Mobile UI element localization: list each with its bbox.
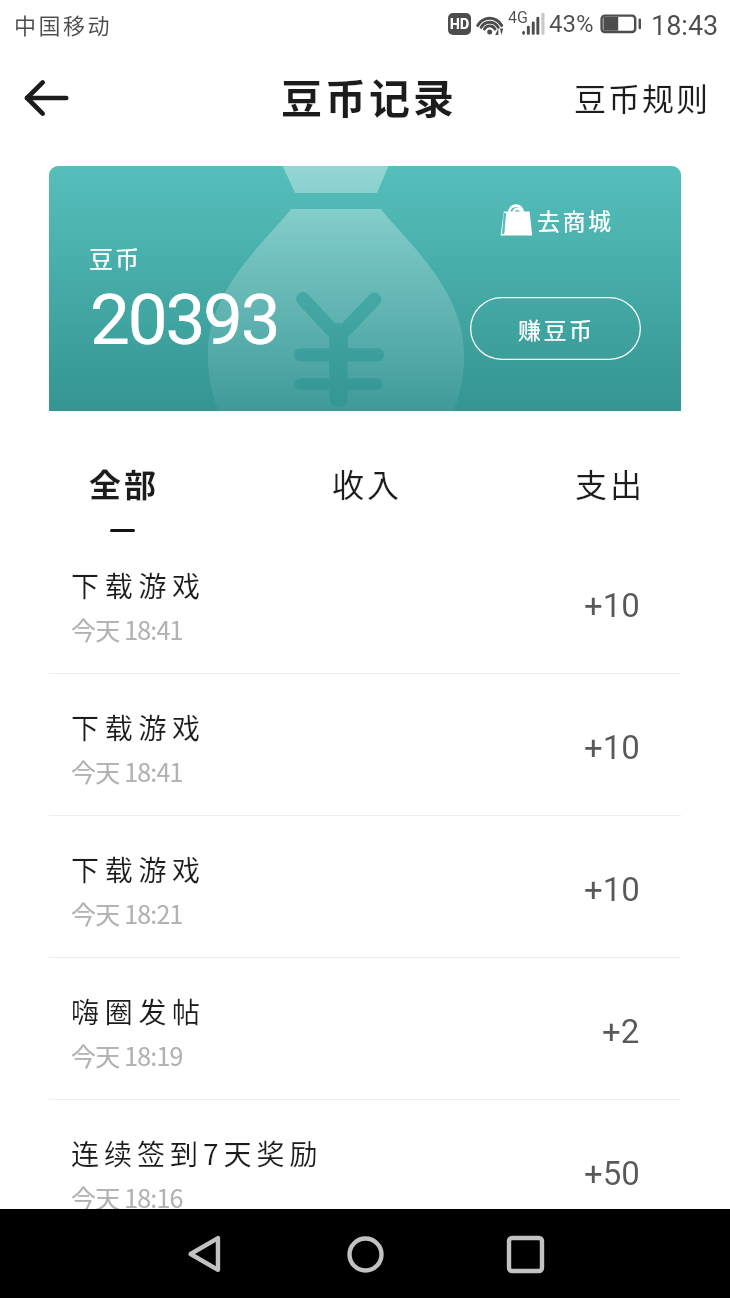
staticText: 今天 18:16	[71, 1179, 183, 1215]
staticText: +50	[584, 1154, 640, 1193]
staticText: 支出	[575, 460, 646, 506]
staticText: 中国移动	[14, 8, 113, 40]
button[interactable]: 连续签到7天奖励	[0, 1100, 730, 1242]
staticText: 4G	[508, 8, 528, 27]
button[interactable]: Recent apps	[485, 1214, 565, 1294]
button[interactable]: 赚豆币	[470, 297, 641, 360]
button[interactable]: 嗨圈发帖	[0, 958, 730, 1100]
button[interactable]: Home	[325, 1214, 405, 1294]
button[interactable]: 收入	[244, 411, 487, 532]
button[interactable]: Back	[165, 1214, 245, 1294]
staticText: 连续签到7天奖励	[71, 1133, 323, 1174]
staticText: 下载游戏	[71, 565, 206, 606]
staticText: 下载游戏	[71, 849, 206, 890]
staticText: 嗨圈发帖	[71, 991, 206, 1032]
staticText: 18:43	[651, 10, 719, 42]
staticText: 豆币	[89, 240, 141, 275]
button[interactable]: 豆币规则	[550, 56, 730, 138]
staticText: 43%	[549, 10, 594, 38]
button[interactable]: 支出	[487, 411, 730, 532]
staticText: 今天 18:21	[71, 895, 183, 931]
staticText: 豆币规则	[574, 74, 711, 120]
staticText: 豆币记录	[281, 66, 457, 125]
staticText: 去商城	[537, 203, 614, 236]
staticText: HD	[450, 16, 470, 32]
button[interactable]: Back	[8, 60, 84, 136]
button[interactable]: 去商城	[497, 200, 614, 233]
button[interactable]: 全部	[0, 411, 244, 532]
button[interactable]: 下载游戏	[0, 532, 730, 674]
staticText: 下载游戏	[71, 707, 206, 748]
staticText: 今天 18:41	[71, 753, 183, 789]
staticText: +10	[584, 586, 640, 625]
staticText: +2	[602, 1012, 640, 1051]
staticText: 赚豆币	[518, 312, 595, 345]
staticText: 全部	[89, 460, 160, 506]
staticText: 20393	[90, 278, 279, 361]
staticText: 今天 18:19	[71, 1037, 183, 1073]
staticText: +10	[584, 728, 640, 767]
staticText: +10	[584, 870, 640, 909]
button[interactable]: 下载游戏	[0, 674, 730, 816]
staticText: 收入	[332, 460, 403, 506]
button[interactable]: 下载游戏	[0, 816, 730, 958]
staticText: 今天 18:41	[71, 611, 183, 647]
